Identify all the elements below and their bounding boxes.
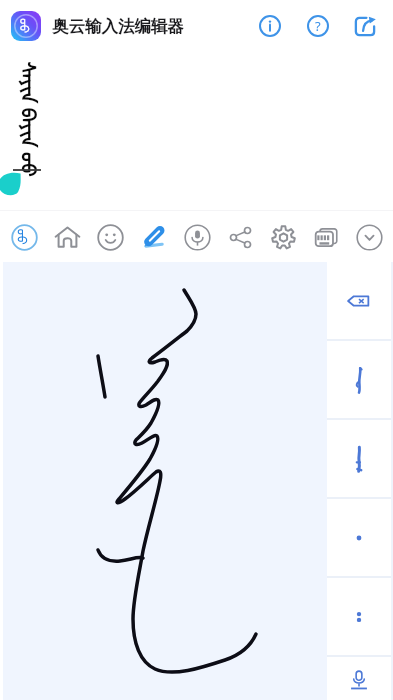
- button[interactable]: gear: [264, 218, 302, 256]
- button[interactable]: Help: [304, 12, 332, 40]
- staticText: 奥云输入法编辑器: [52, 16, 184, 37]
- staticText: ?: [315, 17, 321, 35]
- button[interactable]: Suggestion 2: [327, 420, 391, 497]
- button[interactable]: pen: [134, 218, 172, 256]
- button[interactable]: Voice input: [327, 657, 391, 700]
- button[interactable]: Dot: [327, 499, 391, 576]
- button[interactable]: smiley: [91, 218, 129, 256]
- button[interactable]: Info: [256, 12, 284, 40]
- button[interactable]: Colon: [327, 578, 391, 655]
- button[interactable]: App icon: [11, 11, 41, 41]
- button[interactable]: share: [221, 218, 259, 256]
- button[interactable]: Backspace: [327, 262, 391, 339]
- button[interactable]: home: [48, 218, 86, 256]
- button[interactable]: Suggestion 1: [327, 341, 391, 418]
- button[interactable]: keyboard: [307, 218, 345, 256]
- button[interactable]: logo: [5, 218, 43, 256]
- button[interactable]: chevron: [350, 218, 388, 256]
- button[interactable]: mic: [178, 218, 216, 256]
- button[interactable]: Share: [351, 12, 379, 40]
